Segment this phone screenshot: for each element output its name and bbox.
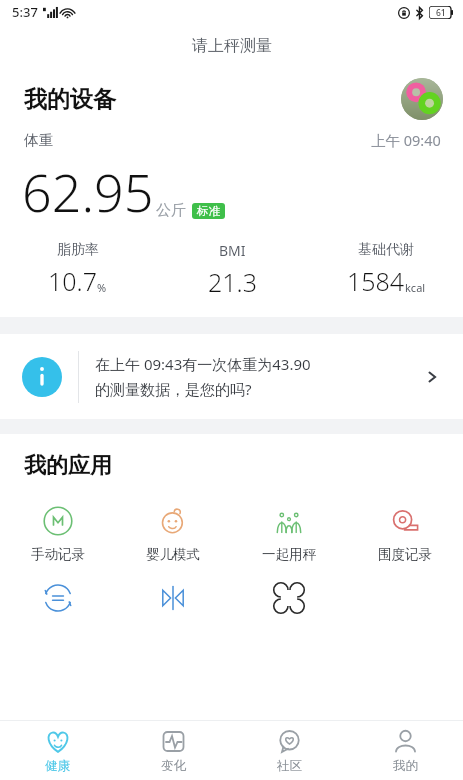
staticText: 5:37: [12, 3, 38, 21]
button[interactable]: 脂肪率: [0, 241, 155, 298]
button[interactable]: 婴儿模式: [115, 504, 231, 563]
staticText: 脂肪率: [57, 241, 99, 259]
staticText: 手动记录: [31, 546, 85, 563]
staticText: 婴儿模式: [146, 546, 200, 563]
button[interactable]: 我的设备: [24, 85, 116, 114]
other: Open: [417, 362, 447, 392]
staticText: 10.7: [48, 264, 97, 298]
staticText: 围度记录: [378, 546, 432, 563]
staticText: 我的: [393, 758, 418, 774]
button[interactable]: BMI: [155, 241, 309, 299]
staticText: 61: [436, 7, 446, 19]
button[interactable]: 标准: [192, 203, 225, 219]
button[interactable]: Device avatar: [401, 78, 443, 120]
staticText: 1584: [347, 264, 405, 298]
staticText: 上午 09:40: [371, 130, 441, 150]
staticText: 健康: [45, 758, 70, 774]
button[interactable]: 我的: [347, 721, 463, 780]
staticText: 21.3: [208, 265, 257, 299]
staticText: 请上秤测量: [192, 36, 272, 56]
staticText: %: [97, 280, 107, 295]
staticText: 公斤: [156, 201, 186, 220]
button[interactable]: 围度记录: [347, 504, 463, 563]
staticText: 标准: [197, 204, 220, 218]
button[interactable]: Sync: [0, 581, 115, 615]
button[interactable]: More apps: [231, 581, 347, 615]
button[interactable]: 在上午 09:43有一次体重为43.90: [0, 334, 463, 419]
button[interactable]: 健康: [0, 721, 115, 780]
button[interactable]: 社区: [231, 721, 347, 780]
staticText: 我的设备: [24, 85, 116, 114]
staticText: 社区: [277, 758, 302, 774]
staticText: 62.95: [22, 156, 154, 227]
staticText: 在上午 09:43有一次体重为43.90: [95, 354, 311, 374]
button[interactable]: 一起用秤: [231, 504, 347, 563]
button[interactable]: 变化: [115, 721, 231, 780]
staticText: 体重: [24, 131, 53, 149]
staticText: 我的应用: [24, 452, 112, 480]
staticText: kcal: [405, 280, 426, 295]
staticText: 的测量数据，是您的吗?: [95, 379, 252, 399]
staticText: 基础代谢: [358, 241, 414, 259]
button[interactable]: 手动记录: [0, 504, 115, 563]
staticText: 变化: [161, 758, 186, 774]
button[interactable]: Compare: [115, 581, 231, 615]
staticText: BMI: [219, 241, 246, 260]
button[interactable]: 基础代谢: [309, 241, 463, 298]
staticText: 一起用秤: [262, 546, 316, 563]
